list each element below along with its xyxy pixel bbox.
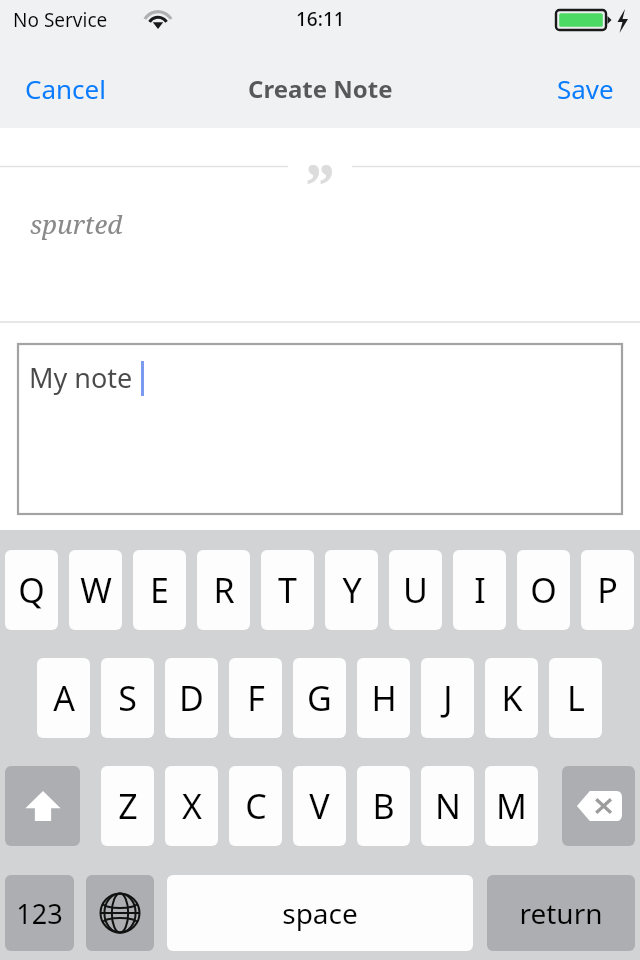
staticText: G [307,675,332,721]
staticText: E [150,567,169,613]
button[interactable]: Save [510,62,632,114]
button[interactable]: T [261,550,314,630]
button[interactable]: V [293,766,346,846]
button[interactable]: Q [5,550,58,630]
button[interactable]: space [167,875,473,951]
button[interactable]: Shift [5,766,80,846]
staticText: B [372,783,395,829]
staticText: S [118,675,137,721]
staticText: A [53,675,75,721]
staticText: Cancel [25,71,106,106]
button[interactable]: 123 [5,875,74,951]
button[interactable]: A [37,658,90,738]
staticText: 16:11 [296,6,345,32]
staticText: T [278,567,297,613]
button[interactable]: Cancel [8,62,128,114]
button[interactable]: L [549,658,602,738]
button[interactable]: N [421,766,474,846]
button[interactable]: O [517,550,570,630]
button[interactable]: Y [325,550,378,630]
staticText: Y [342,567,362,613]
staticText: ” [305,143,336,227]
button[interactable]: R [197,550,250,630]
button[interactable]: My note [18,344,622,514]
button[interactable]: E [133,550,186,630]
button[interactable]: U [389,550,442,630]
button[interactable]: D [165,658,218,738]
staticText: O [530,567,557,613]
staticText: Create Note [248,72,393,105]
staticText: return [519,894,603,932]
button[interactable]: F [229,658,282,738]
staticText: D [179,675,204,721]
staticText: No Service [13,7,108,33]
staticText: R [213,567,235,613]
staticText: W [80,567,112,613]
button[interactable]: Z [101,766,154,846]
staticText: 123 [16,895,63,932]
staticText: H [371,675,397,721]
button[interactable]: return [487,875,635,951]
staticText: Q [18,567,45,613]
staticText: My note [29,359,133,396]
button[interactable]: J [421,658,474,738]
button[interactable]: W [69,550,122,630]
button[interactable]: X [165,766,218,846]
button[interactable]: Next keyboard [86,875,154,951]
button[interactable]: B [357,766,410,846]
button[interactable]: S [101,658,154,738]
button[interactable]: M [485,766,538,846]
staticText: space [282,894,358,932]
staticText: K [501,675,523,721]
staticText: F [247,675,265,721]
staticText: X [182,783,202,829]
button[interactable]: G [293,658,346,738]
staticText: J [443,675,453,721]
staticText: M [496,783,527,829]
staticText: C [245,783,267,829]
staticText: spurted [30,206,123,241]
staticText: P [597,567,618,613]
staticText: L [567,675,585,721]
button[interactable]: P [581,550,634,630]
button[interactable]: K [485,658,538,738]
button[interactable]: Backspace [562,766,635,846]
staticText: V [309,783,330,829]
button[interactable]: C [229,766,282,846]
staticText: U [403,567,428,613]
button[interactable]: I [453,550,506,630]
staticText: I [474,567,486,613]
button[interactable]: H [357,658,410,738]
staticText: Save [557,71,614,106]
staticText: Z [118,783,138,829]
staticText: N [435,783,461,829]
